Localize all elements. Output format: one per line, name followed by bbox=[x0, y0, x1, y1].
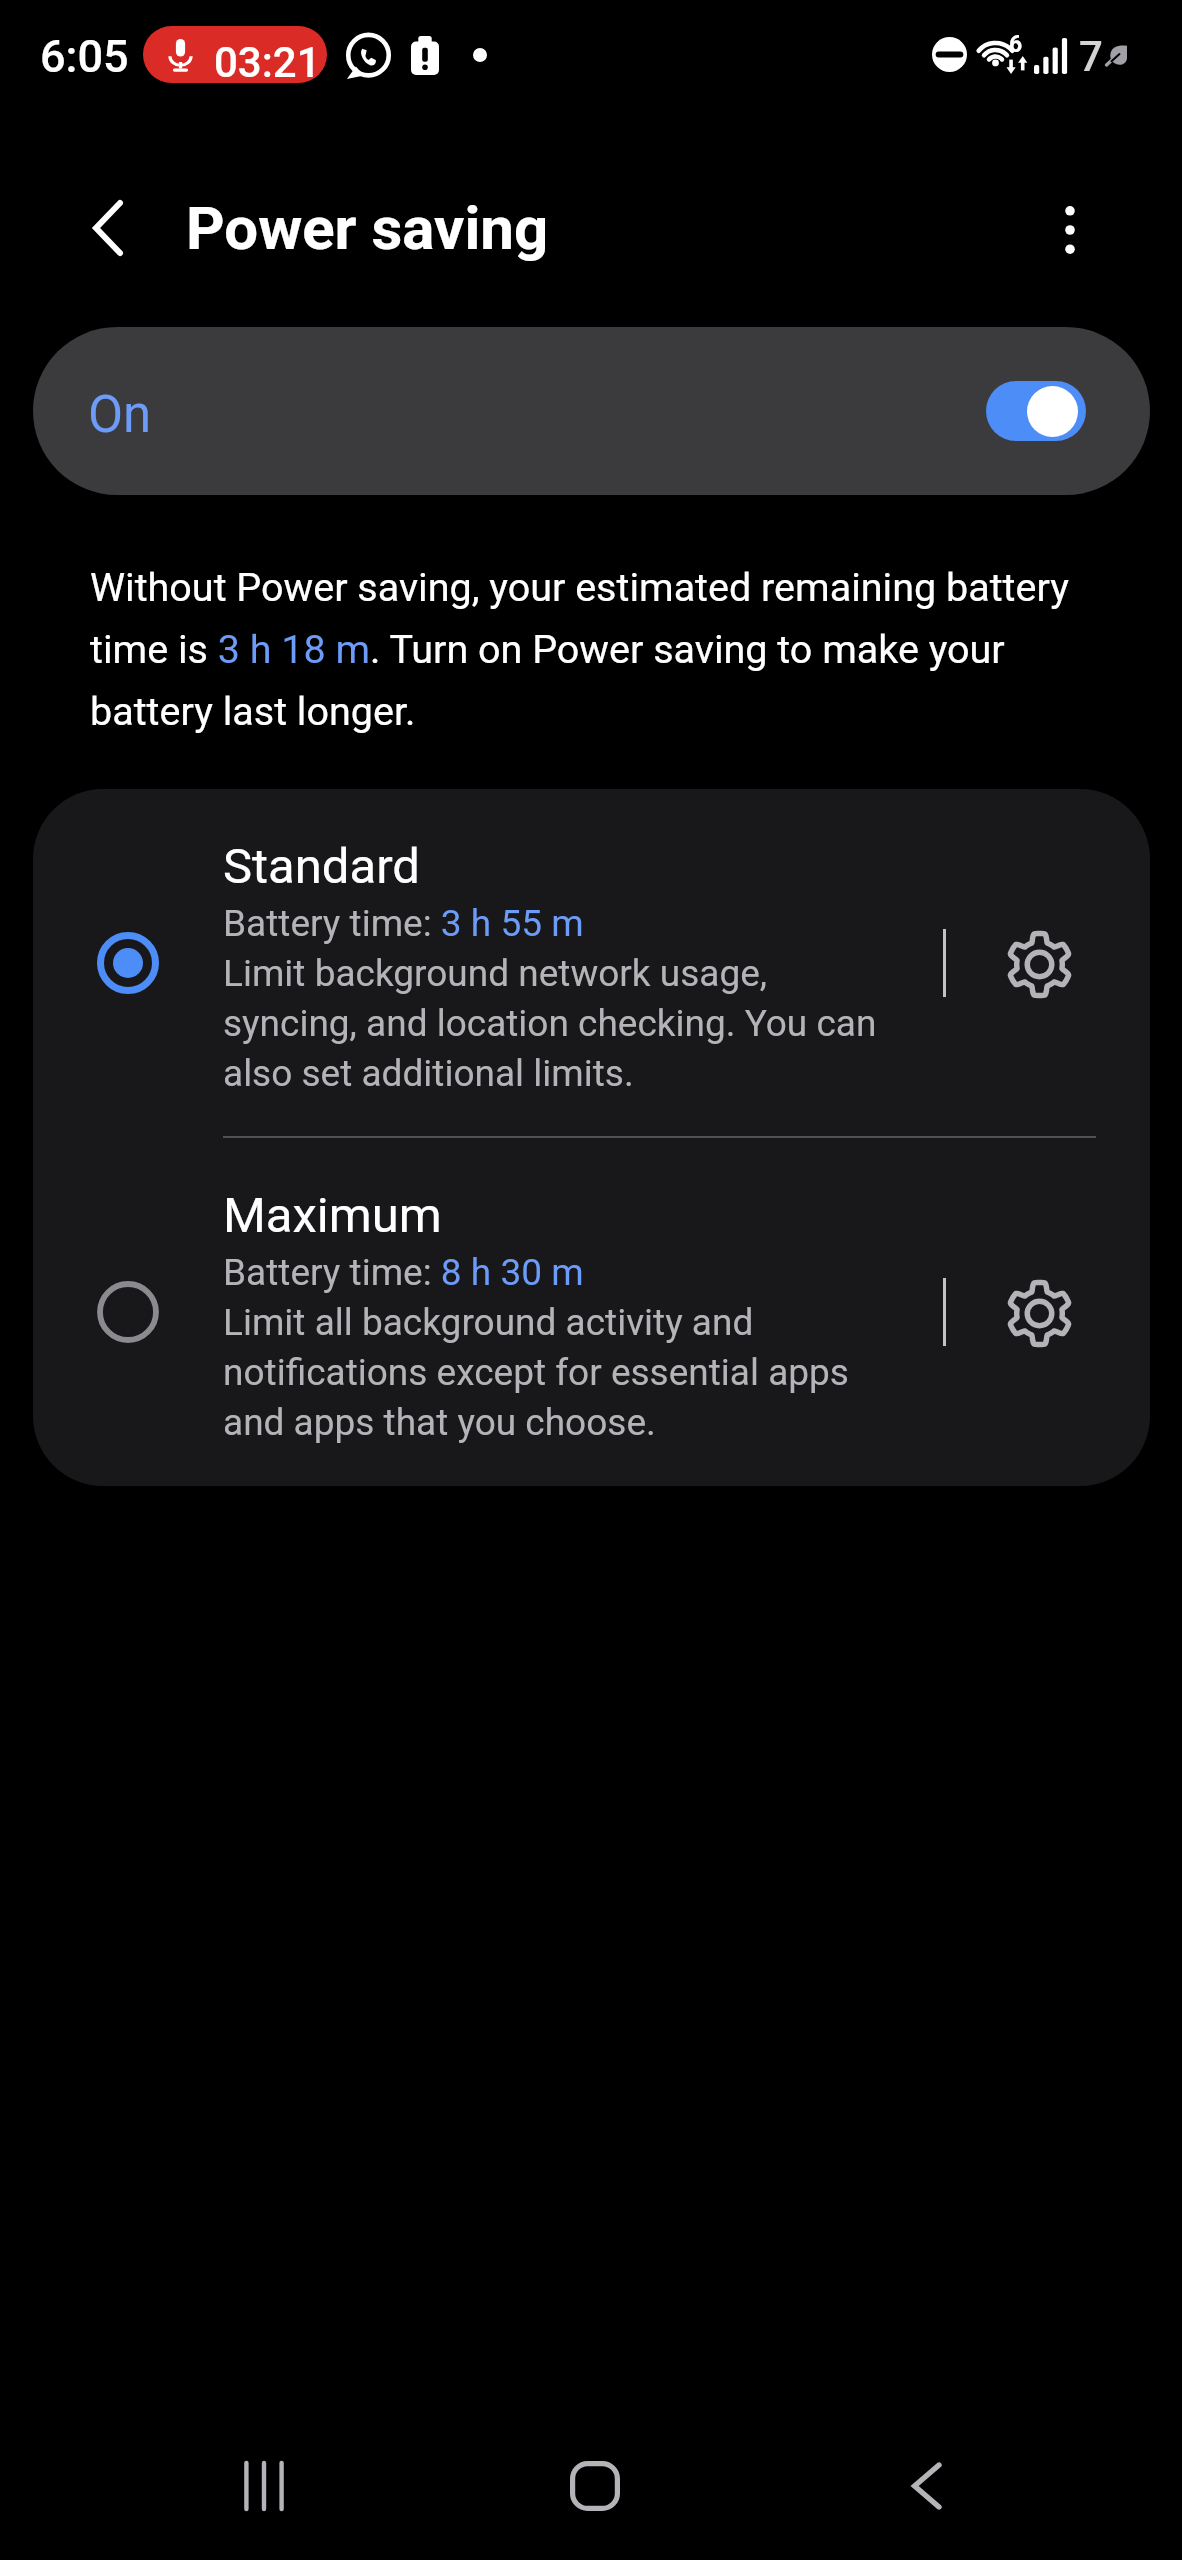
button[interactable]: Recent apps bbox=[214, 2436, 314, 2536]
button[interactable]: On bbox=[33, 327, 1150, 495]
staticText: Power saving bbox=[186, 193, 549, 263]
staticText: Maximum bbox=[223, 1187, 442, 1244]
button[interactable]: Home bbox=[545, 2436, 645, 2536]
button[interactable]: Navigate up bbox=[63, 183, 153, 273]
staticText: 7 bbox=[1079, 32, 1103, 81]
staticText: Battery time: 8 h 30 m Limit all backgro… bbox=[223, 1251, 903, 1444]
button[interactable]: More options bbox=[1026, 186, 1114, 274]
button[interactable]: Back bbox=[876, 2436, 976, 2536]
button[interactable] bbox=[33, 789, 223, 1136]
button[interactable]: Settings bbox=[989, 1263, 1089, 1363]
staticText: Without Power saving, your estimated rem… bbox=[90, 564, 1095, 735]
staticText: 03:21 bbox=[214, 38, 321, 83]
staticText: Standard bbox=[223, 838, 420, 895]
staticText: 6 bbox=[1009, 31, 1023, 58]
button[interactable]: Settings bbox=[989, 914, 1089, 1014]
staticText: Battery time: 3 h 55 m Limit background … bbox=[223, 902, 903, 1095]
staticText: On bbox=[88, 385, 152, 445]
button[interactable] bbox=[33, 1138, 223, 1485]
staticText: 6:05 bbox=[40, 30, 129, 83]
